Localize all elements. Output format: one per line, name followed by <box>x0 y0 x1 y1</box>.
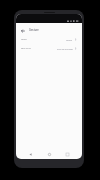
button[interactable]: Recents <box>63 150 72 159</box>
staticText: Touch <box>21 38 27 41</box>
button[interactable]: Back <box>26 150 35 159</box>
button[interactable]: Home <box>45 150 54 159</box>
button[interactable]: Fast scroll <box>16 44 82 53</box>
button[interactable]: Back <box>19 27 26 34</box>
staticText: Vibrate <box>66 39 73 41</box>
staticText: Gesture <box>29 28 39 32</box>
staticText: scroll up and down <box>57 48 73 50</box>
button[interactable]: Touch <box>16 35 82 44</box>
staticText: Fast scroll <box>21 47 31 50</box>
